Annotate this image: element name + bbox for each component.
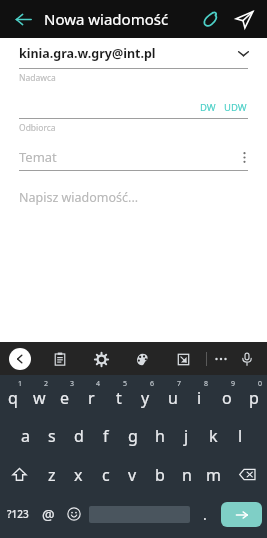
button[interactable]: Enter bbox=[221, 502, 262, 527]
button[interactable]: 6 bbox=[132, 375, 159, 416]
button[interactable]: Settings bbox=[90, 348, 112, 370]
staticText: b bbox=[155, 464, 165, 486]
staticText: w bbox=[33, 387, 46, 409]
button[interactable]: c bbox=[92, 455, 119, 494]
staticText: r bbox=[88, 387, 95, 409]
staticText: k bbox=[209, 425, 218, 447]
button[interactable]: k bbox=[200, 416, 227, 455]
staticText: v bbox=[128, 464, 137, 486]
button[interactable]: Resize keyboard bbox=[172, 348, 194, 370]
staticText: 6 bbox=[150, 379, 155, 389]
staticText: 0 bbox=[258, 379, 263, 389]
button[interactable]: More bbox=[210, 348, 232, 370]
staticText: f bbox=[103, 425, 109, 447]
staticText: c bbox=[102, 464, 110, 486]
button[interactable]: 3 bbox=[52, 375, 78, 416]
button[interactable]: UDW bbox=[221, 101, 250, 114]
button[interactable]: Temat bbox=[0, 144, 267, 170]
button[interactable]: 2 bbox=[26, 375, 52, 416]
staticText: Temat bbox=[19, 148, 57, 166]
staticText: s bbox=[48, 425, 56, 447]
staticText: a bbox=[21, 425, 30, 447]
button[interactable]: 1 bbox=[0, 375, 26, 416]
staticText: DW bbox=[200, 101, 216, 114]
button[interactable]: 5 bbox=[105, 375, 132, 416]
button[interactable]: h bbox=[146, 416, 173, 455]
button[interactable]: x bbox=[65, 455, 92, 494]
staticText: n bbox=[182, 464, 192, 486]
button[interactable]: Backspace bbox=[227, 455, 267, 494]
staticText: d bbox=[74, 425, 84, 447]
button[interactable]: More options bbox=[233, 146, 255, 168]
staticText: @ bbox=[42, 505, 55, 524]
button[interactable]: Emoji bbox=[61, 494, 86, 534]
button[interactable]: @ bbox=[36, 494, 61, 534]
button[interactable]: Send bbox=[227, 2, 261, 36]
button[interactable]: b bbox=[146, 455, 173, 494]
button[interactable]: d bbox=[65, 416, 92, 455]
staticText: m bbox=[206, 464, 221, 486]
staticText: e bbox=[60, 387, 70, 409]
staticText: UDW bbox=[224, 101, 247, 114]
button[interactable]: s bbox=[38, 416, 65, 455]
staticText: 7 bbox=[177, 379, 182, 389]
staticText: . bbox=[203, 505, 207, 524]
staticText: Nadawca bbox=[19, 72, 56, 84]
button[interactable]: 0 bbox=[240, 375, 267, 416]
staticText: Odbiorca bbox=[19, 122, 56, 134]
staticText: h bbox=[155, 425, 165, 447]
button[interactable]: n bbox=[173, 455, 200, 494]
button[interactable]: Back bbox=[8, 4, 38, 34]
staticText: x bbox=[74, 464, 83, 486]
staticText: 5 bbox=[123, 379, 128, 389]
button[interactable]: Clipboard bbox=[49, 348, 71, 370]
staticText: u bbox=[168, 387, 178, 409]
staticText: g bbox=[128, 425, 138, 447]
staticText: 4 bbox=[96, 379, 101, 389]
button[interactable]: 7 bbox=[159, 375, 186, 416]
button[interactable]: f bbox=[92, 416, 119, 455]
button[interactable]: Shift bbox=[0, 455, 39, 494]
staticText: 8 bbox=[204, 379, 209, 389]
button[interactable]: z bbox=[39, 455, 65, 494]
button[interactable]: a bbox=[12, 416, 38, 455]
other: Expand sender bbox=[233, 43, 253, 63]
button[interactable]: Attach bbox=[193, 2, 227, 36]
button[interactable]: kinia.gra.w.gry@int.pl bbox=[0, 38, 267, 68]
button[interactable]: l bbox=[227, 416, 254, 455]
button[interactable]: DW bbox=[197, 101, 219, 114]
staticText: 2 bbox=[44, 379, 49, 389]
staticText: q bbox=[8, 387, 18, 409]
button[interactable]: j bbox=[173, 416, 200, 455]
staticText: 9 bbox=[231, 379, 236, 389]
button[interactable]: g bbox=[119, 416, 146, 455]
staticText: z bbox=[48, 464, 56, 486]
staticText: 1 bbox=[18, 379, 23, 389]
button[interactable]: Napisz wiadomość... bbox=[19, 189, 267, 206]
staticText: l bbox=[238, 425, 243, 447]
button[interactable]: Themes bbox=[131, 348, 153, 370]
button[interactable]: Expand toolbar bbox=[9, 348, 31, 370]
staticText: ?123 bbox=[7, 507, 29, 521]
staticText: o bbox=[222, 387, 232, 409]
button[interactable]: m bbox=[200, 455, 227, 494]
staticText: 3 bbox=[70, 379, 75, 389]
staticText: j bbox=[184, 425, 189, 447]
button[interactable]: . bbox=[193, 494, 216, 534]
button[interactable]: 4 bbox=[78, 375, 105, 416]
button[interactable]: 8 bbox=[186, 375, 213, 416]
staticText: y bbox=[141, 387, 150, 409]
button[interactable]: ?123 bbox=[0, 494, 36, 534]
staticText: t bbox=[116, 387, 122, 409]
staticText: Nowa wiadomość bbox=[44, 9, 169, 29]
staticText: i bbox=[197, 387, 202, 409]
button[interactable]: v bbox=[119, 455, 146, 494]
staticText: kinia.gra.w.gry@int.pl bbox=[19, 45, 156, 62]
staticText: p bbox=[249, 387, 259, 409]
button[interactable]: 9 bbox=[213, 375, 240, 416]
button[interactable]: Voice input bbox=[236, 348, 258, 370]
